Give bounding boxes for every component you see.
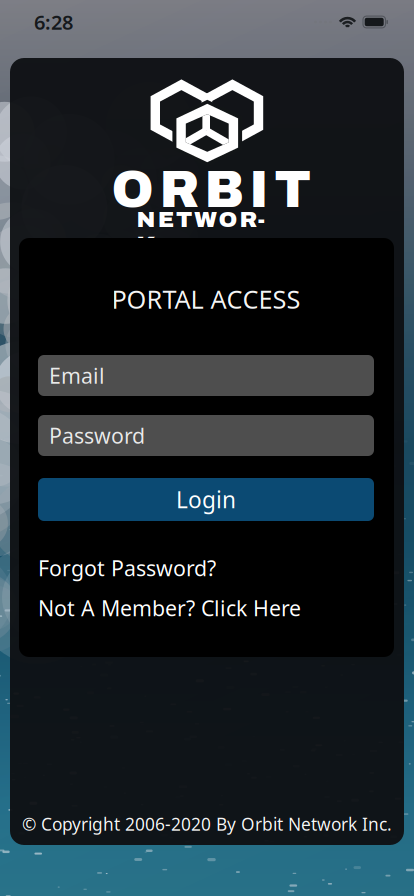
staticText: 6:28: [34, 9, 73, 35]
staticText: © Copyright 2006-2020 By Orbit Network I…: [22, 812, 392, 835]
button[interactable]: Forgot Password?: [38, 556, 374, 580]
staticText: ORBIT: [111, 162, 311, 217]
staticText: Email: [49, 361, 105, 390]
button[interactable]: Not A Member? Click Here: [38, 596, 374, 620]
staticText: PORTAL ACCESS: [111, 282, 300, 316]
staticText: NETWORK: [137, 207, 279, 232]
staticText: Login: [176, 484, 236, 514]
staticText: Forgot Password?: [38, 554, 216, 582]
staticText: Not A Member? Click Here: [38, 594, 301, 622]
button[interactable]: Login: [38, 478, 374, 521]
staticText: Password: [49, 421, 145, 450]
